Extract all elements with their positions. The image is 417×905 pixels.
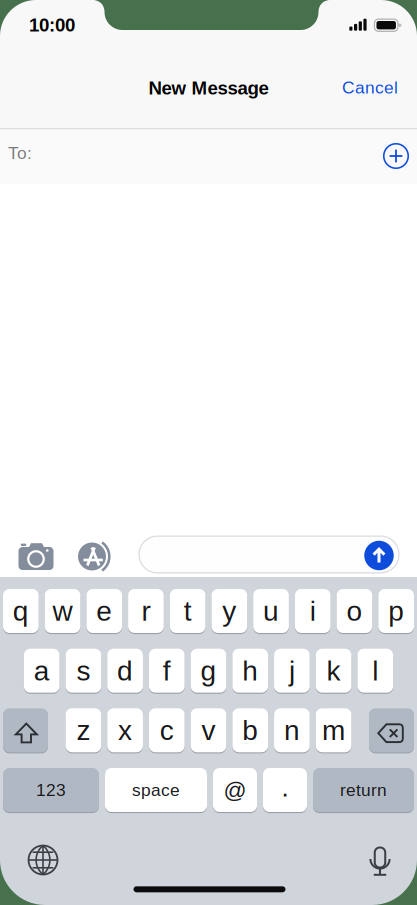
staticText: w: [53, 596, 73, 626]
staticText: q: [13, 596, 29, 626]
staticText: j: [289, 655, 295, 686]
staticText: z: [76, 715, 90, 745]
button[interactable]: space: [105, 768, 207, 812]
staticText: m: [322, 715, 345, 745]
button[interactable]: t: [170, 589, 205, 633]
button[interactable]: Add Contact: [379, 139, 413, 173]
button[interactable]: Delete: [369, 708, 414, 752]
button[interactable]: Apps: [72, 538, 116, 574]
staticText: space: [132, 781, 180, 799]
staticText: 123: [36, 781, 66, 799]
staticText: New Message: [148, 78, 268, 98]
button[interactable]: i: [295, 589, 331, 633]
button[interactable]: z: [66, 708, 101, 752]
staticText: c: [160, 715, 174, 745]
button[interactable]: f: [149, 649, 185, 693]
button[interactable]: Send: [364, 541, 394, 570]
button[interactable]: b: [232, 708, 268, 752]
button[interactable]: return: [313, 768, 414, 812]
button[interactable]: Cancel: [325, 67, 415, 107]
staticText: @: [223, 778, 246, 802]
button[interactable]: n: [274, 708, 310, 752]
button[interactable]: j: [274, 649, 310, 693]
button[interactable]: x: [107, 708, 143, 752]
staticText: y: [222, 596, 236, 626]
button[interactable]: m: [316, 708, 351, 752]
button[interactable]: s: [66, 649, 101, 693]
staticText: n: [284, 715, 300, 745]
staticText: h: [242, 655, 258, 686]
button[interactable]: Camera: [14, 538, 58, 574]
button[interactable]: .: [263, 768, 307, 812]
staticText: p: [388, 596, 404, 626]
staticText: l: [372, 655, 378, 686]
button[interactable]: c: [149, 708, 185, 752]
staticText: e: [96, 596, 112, 626]
button[interactable]: a: [24, 649, 60, 693]
staticText: s: [76, 655, 90, 686]
staticText: k: [327, 655, 341, 686]
staticText: return: [340, 781, 387, 799]
button[interactable]: k: [316, 649, 351, 693]
button[interactable]: w: [45, 589, 80, 633]
staticText: x: [118, 715, 132, 745]
button[interactable]: u: [253, 589, 289, 633]
staticText: o: [346, 596, 362, 626]
staticText: b: [242, 715, 258, 745]
staticText: t: [184, 596, 192, 626]
button[interactable]: e: [86, 589, 122, 633]
staticText: u: [263, 596, 279, 626]
button[interactable]: o: [337, 589, 372, 633]
staticText: v: [201, 715, 215, 745]
staticText: d: [117, 655, 133, 686]
staticText: r: [141, 596, 150, 626]
staticText: .: [282, 780, 287, 800]
staticText: g: [200, 655, 216, 686]
staticText: Cancel: [342, 78, 398, 97]
staticText: 10:00: [29, 15, 75, 35]
button[interactable]: d: [107, 649, 143, 693]
button[interactable]: 123: [3, 768, 99, 812]
staticText: i: [310, 596, 316, 626]
button[interactable]: Next Keyboard: [23, 840, 63, 880]
button[interactable]: v: [191, 708, 226, 752]
button[interactable]: p: [378, 589, 414, 633]
button[interactable]: Dictation: [360, 840, 400, 880]
staticText: a: [34, 655, 50, 686]
button[interactable]: l: [357, 649, 393, 693]
staticText: f: [163, 655, 171, 686]
button[interactable]: y: [211, 589, 247, 633]
button[interactable]: r: [128, 589, 164, 633]
button[interactable]: Shift: [3, 708, 48, 752]
staticText: To:: [8, 144, 32, 162]
button[interactable]: q: [3, 589, 39, 633]
button[interactable]: @: [213, 768, 257, 812]
button[interactable]: g: [191, 649, 226, 693]
button[interactable]: h: [232, 649, 268, 693]
